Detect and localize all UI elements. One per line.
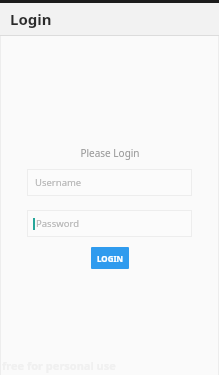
staticText: LOGIN <box>97 253 124 264</box>
staticText: free for personal use <box>2 358 116 373</box>
staticText: Password <box>36 217 79 230</box>
button[interactable]: Username <box>27 169 192 196</box>
button[interactable]: LOGIN <box>91 247 129 269</box>
button[interactable]: Password <box>27 210 192 237</box>
staticText: Please Login <box>80 146 140 160</box>
staticText: Login <box>10 9 52 29</box>
staticText: Username <box>35 176 82 189</box>
